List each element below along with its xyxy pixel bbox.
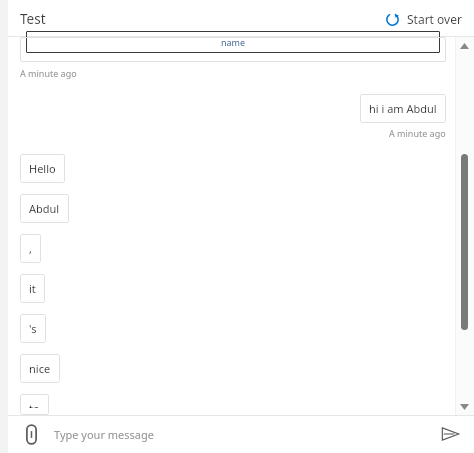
button[interactable]: Scroll down bbox=[455, 398, 474, 415]
button[interactable]: 's bbox=[20, 314, 46, 343]
button[interactable]: name bbox=[20, 37, 446, 62]
staticText: 's bbox=[29, 321, 37, 336]
button[interactable]: it bbox=[20, 274, 45, 303]
staticText: , bbox=[29, 241, 32, 256]
staticText: Abdul bbox=[29, 201, 60, 216]
button[interactable]: hi i am Abdul bbox=[360, 94, 446, 123]
button[interactable]: Type your message bbox=[54, 427, 436, 442]
staticText: it bbox=[29, 281, 36, 296]
staticText: hi i am Abdul bbox=[369, 101, 437, 116]
staticText: Hello bbox=[29, 161, 56, 176]
staticText: nice bbox=[29, 361, 51, 376]
staticText: Type your message bbox=[54, 427, 154, 442]
other: Start over bbox=[385, 12, 400, 27]
button[interactable]: to bbox=[20, 394, 49, 415]
button[interactable]: Start over bbox=[385, 11, 462, 27]
button[interactable]: , bbox=[20, 234, 41, 263]
button[interactable]: nice bbox=[20, 354, 60, 383]
staticText: Start over bbox=[407, 11, 462, 27]
staticText: name bbox=[221, 36, 246, 48]
button[interactable] bbox=[461, 154, 468, 330]
staticText: A minute ago bbox=[20, 67, 77, 79]
button[interactable]: Hello bbox=[20, 154, 65, 183]
staticText: A minute ago bbox=[389, 127, 446, 139]
button[interactable]: Attach file bbox=[18, 421, 44, 447]
button[interactable]: Abdul bbox=[20, 194, 69, 223]
button[interactable]: Scroll up bbox=[455, 37, 474, 54]
button[interactable]: Send bbox=[436, 420, 464, 448]
staticText: Test bbox=[20, 10, 46, 28]
staticText: to bbox=[29, 401, 40, 408]
